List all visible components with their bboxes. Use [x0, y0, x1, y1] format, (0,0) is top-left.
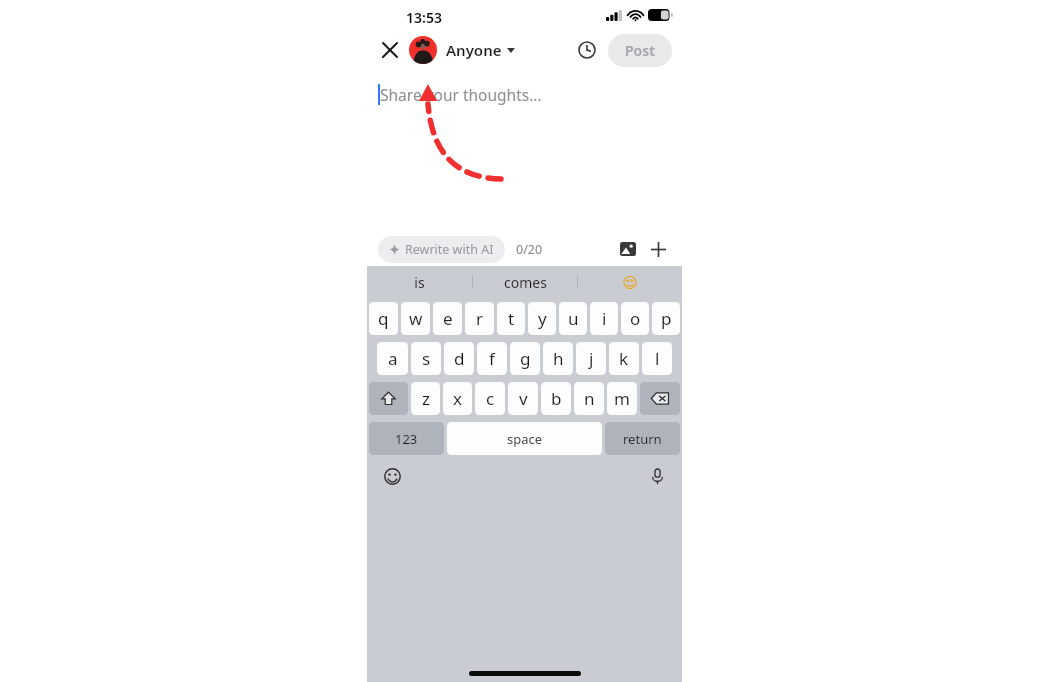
staticText: l: [655, 347, 660, 370]
staticText: q: [378, 307, 389, 330]
button[interactable]: k: [609, 342, 639, 375]
button[interactable]: Schedule post: [572, 35, 602, 65]
staticText: 😌: [622, 274, 638, 291]
staticText: w: [409, 307, 423, 330]
button[interactable]: z: [411, 382, 440, 415]
button[interactable]: g: [510, 342, 540, 375]
button[interactable]: Emoji keyboard: [381, 465, 403, 487]
button[interactable]: a: [377, 342, 408, 375]
staticText: Post: [625, 41, 655, 60]
staticText: y: [538, 307, 547, 330]
staticText: 0/20: [516, 241, 543, 258]
staticText: is: [414, 273, 425, 292]
staticText: a: [388, 347, 398, 370]
button[interactable]: i: [590, 302, 618, 335]
button[interactable]: Post: [608, 34, 672, 67]
staticText: g: [520, 347, 531, 370]
staticText: k: [619, 347, 629, 370]
staticText: n: [584, 387, 595, 410]
button[interactable]: s: [411, 342, 441, 375]
staticText: comes: [504, 273, 547, 292]
staticText: f: [489, 347, 495, 370]
staticText: b: [551, 387, 562, 410]
button[interactable]: space: [447, 422, 602, 455]
button[interactable]: More options: [645, 236, 671, 262]
button[interactable]: Rewrite with AI: [378, 236, 505, 263]
button[interactable]: is: [367, 266, 472, 298]
staticText: z: [422, 387, 430, 410]
button[interactable]: p: [652, 302, 680, 335]
button[interactable]: x: [443, 382, 472, 415]
staticText: j: [589, 347, 594, 370]
button[interactable]: b: [541, 382, 571, 415]
button[interactable]: Dictation: [646, 465, 668, 487]
staticText: c: [486, 387, 495, 410]
button[interactable]: e: [433, 302, 462, 335]
staticText: h: [553, 347, 564, 370]
staticText: u: [568, 307, 579, 330]
staticText: i: [602, 307, 607, 330]
staticText: Anyone: [446, 40, 502, 60]
button[interactable]: 😌: [578, 266, 682, 298]
staticText: s: [422, 347, 431, 370]
button[interactable]: m: [607, 382, 637, 415]
button[interactable]: Shift: [369, 382, 408, 415]
button[interactable]: Anyone: [409, 36, 515, 64]
button[interactable]: Backspace: [640, 382, 680, 415]
staticText: t: [508, 307, 515, 330]
button[interactable]: r: [465, 302, 494, 335]
button[interactable]: t: [497, 302, 525, 335]
button[interactable]: 123: [369, 422, 444, 455]
button[interactable]: y: [528, 302, 556, 335]
staticText: space: [507, 430, 543, 448]
button[interactable]: Add photo: [615, 236, 641, 262]
button[interactable]: c: [475, 382, 505, 415]
button[interactable]: u: [559, 302, 587, 335]
staticText: Rewrite with AI: [405, 241, 494, 258]
staticText: 123: [395, 430, 418, 448]
button[interactable]: j: [576, 342, 606, 375]
staticText: Share your thoughts...: [380, 84, 542, 105]
button[interactable]: h: [543, 342, 573, 375]
staticText: x: [453, 387, 462, 410]
button[interactable]: v: [508, 382, 538, 415]
staticText: e: [443, 307, 453, 330]
staticText: 13:53: [406, 8, 442, 27]
button[interactable]: o: [621, 302, 649, 335]
button[interactable]: comes: [473, 266, 577, 298]
button[interactable]: Close: [377, 37, 403, 63]
button[interactable]: return: [605, 422, 680, 455]
button[interactable]: w: [401, 302, 430, 335]
button[interactable]: n: [574, 382, 604, 415]
staticText: m: [614, 387, 630, 410]
button[interactable]: d: [444, 342, 474, 375]
staticText: d: [454, 347, 465, 370]
staticText: v: [519, 387, 528, 410]
staticText: o: [630, 307, 641, 330]
button[interactable]: l: [642, 342, 672, 375]
button[interactable]: f: [477, 342, 507, 375]
button[interactable]: q: [369, 302, 398, 335]
staticText: r: [476, 307, 484, 330]
staticText: p: [661, 307, 672, 330]
staticText: return: [623, 430, 662, 448]
